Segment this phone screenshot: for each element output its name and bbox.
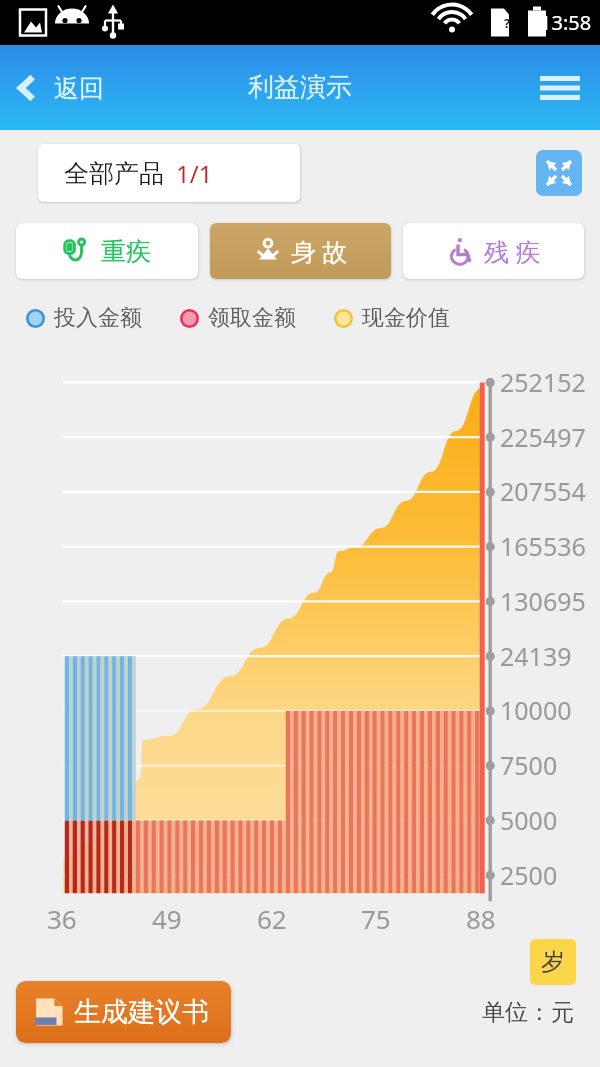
staticText: 5000 (500, 803, 558, 837)
staticText: 88 (466, 901, 496, 936)
staticText: 1/1 (176, 157, 213, 190)
button[interactable]: 重疾 (16, 223, 198, 279)
staticText: 投入金额 (54, 304, 142, 332)
staticText: 单位：元 (482, 998, 574, 1027)
staticText: 生成建议书 (74, 995, 209, 1029)
staticText: 残 疾 (484, 234, 541, 268)
staticText: 24139 (500, 639, 572, 673)
button[interactable]: 返回 (0, 63, 120, 113)
button[interactable]: 身 故 (210, 223, 391, 279)
staticText: 49 (152, 901, 182, 936)
button[interactable]: 残 疾 (403, 223, 584, 279)
staticText: 全部产品 (64, 158, 164, 189)
button[interactable]: Fullscreen (536, 150, 582, 196)
staticText: 75 (361, 901, 391, 936)
staticText: 252152 (500, 365, 586, 399)
staticText: 现金价值 (362, 304, 450, 332)
staticText: 130695 (500, 584, 586, 618)
staticText: 13:58 (540, 9, 592, 36)
button[interactable]: 岁 (530, 939, 576, 985)
staticText: 225497 (500, 420, 586, 454)
staticText: 36 (47, 901, 77, 936)
staticText: 165536 (500, 529, 586, 563)
staticText: ? (504, 14, 511, 32)
staticText: 2500 (500, 858, 558, 892)
button[interactable]: 全部产品 (38, 144, 300, 202)
staticText: 利益演示 (248, 71, 352, 104)
staticText: 10000 (500, 693, 572, 727)
staticText: 62 (257, 901, 287, 936)
staticText: 领取金额 (208, 304, 296, 332)
staticText: 返回 (54, 73, 104, 104)
button[interactable]: Menu (520, 56, 600, 120)
staticText: 身 故 (291, 234, 348, 268)
button[interactable]: 生成建议书 (16, 981, 231, 1043)
staticText: 重疾 (101, 236, 151, 267)
staticText: 岁 (541, 947, 565, 977)
staticText: 207554 (500, 474, 586, 508)
staticText: 7500 (500, 748, 558, 782)
